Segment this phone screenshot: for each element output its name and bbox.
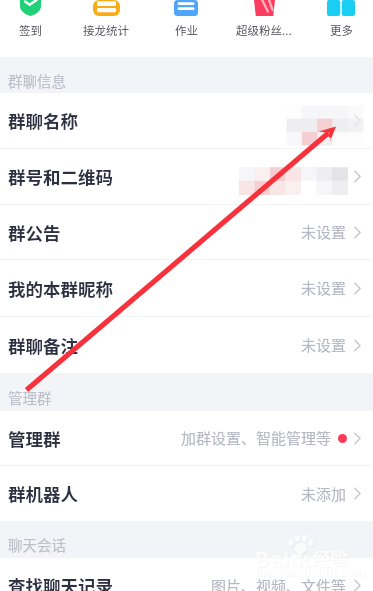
staticText: 未设置 — [301, 221, 347, 243]
staticText: 超级粉丝... — [236, 22, 292, 39]
staticText: 群号和二维码 — [8, 164, 113, 189]
button[interactable]: 管理群 — [0, 411, 373, 465]
staticText: 查找聊天记录 — [8, 573, 113, 591]
staticText: 图片、视频、文件等 — [211, 575, 347, 591]
staticText: 签到 — [19, 22, 42, 39]
staticText: 更多 — [330, 22, 353, 39]
staticText: 未添加 — [301, 483, 347, 505]
staticText: 加群设置、智能管理等 — [181, 427, 332, 449]
button[interactable]: 群聊名称 — [0, 93, 373, 148]
button[interactable]: 接龙统计 — [69, 0, 143, 48]
staticText: 群聊信息 — [8, 70, 66, 91]
staticText: 管理群 — [8, 426, 61, 451]
button[interactable]: 群号和二维码 — [0, 149, 373, 204]
staticText: 群机器人 — [8, 481, 78, 506]
staticText: 群公告 — [8, 220, 61, 245]
button[interactable]: 超级粉丝 — [227, 0, 301, 48]
staticText: 未设置 — [301, 277, 347, 299]
staticText: 我的本群昵称 — [8, 276, 113, 301]
staticText: 聊天会话 — [8, 534, 66, 555]
button[interactable]: 更多 — [304, 0, 373, 48]
button[interactable]: 群公告 — [0, 205, 373, 259]
staticText: 未设置 — [301, 334, 347, 356]
staticText: Baidu — [256, 544, 319, 574]
button[interactable]: 查找聊天记录 — [0, 558, 373, 591]
staticText: jingyan.baidu.com — [256, 564, 367, 580]
staticText: 群聊备注 — [8, 333, 78, 358]
button[interactable]: 群聊备注 — [0, 317, 373, 373]
button[interactable]: 签到 — [0, 0, 67, 48]
staticText: 经验 — [315, 546, 349, 571]
staticText: 接龙统计 — [83, 22, 129, 39]
button[interactable]: 群机器人 — [0, 466, 373, 521]
button[interactable]: 作业 — [149, 0, 223, 48]
staticText: 管理群 — [8, 387, 52, 408]
staticText: Baidu — [255, 543, 318, 573]
staticText: 群聊名称 — [8, 108, 78, 133]
button[interactable]: 我的本群昵称 — [0, 260, 373, 316]
staticText: 作业 — [175, 22, 198, 39]
staticText: 经验 — [314, 545, 348, 570]
